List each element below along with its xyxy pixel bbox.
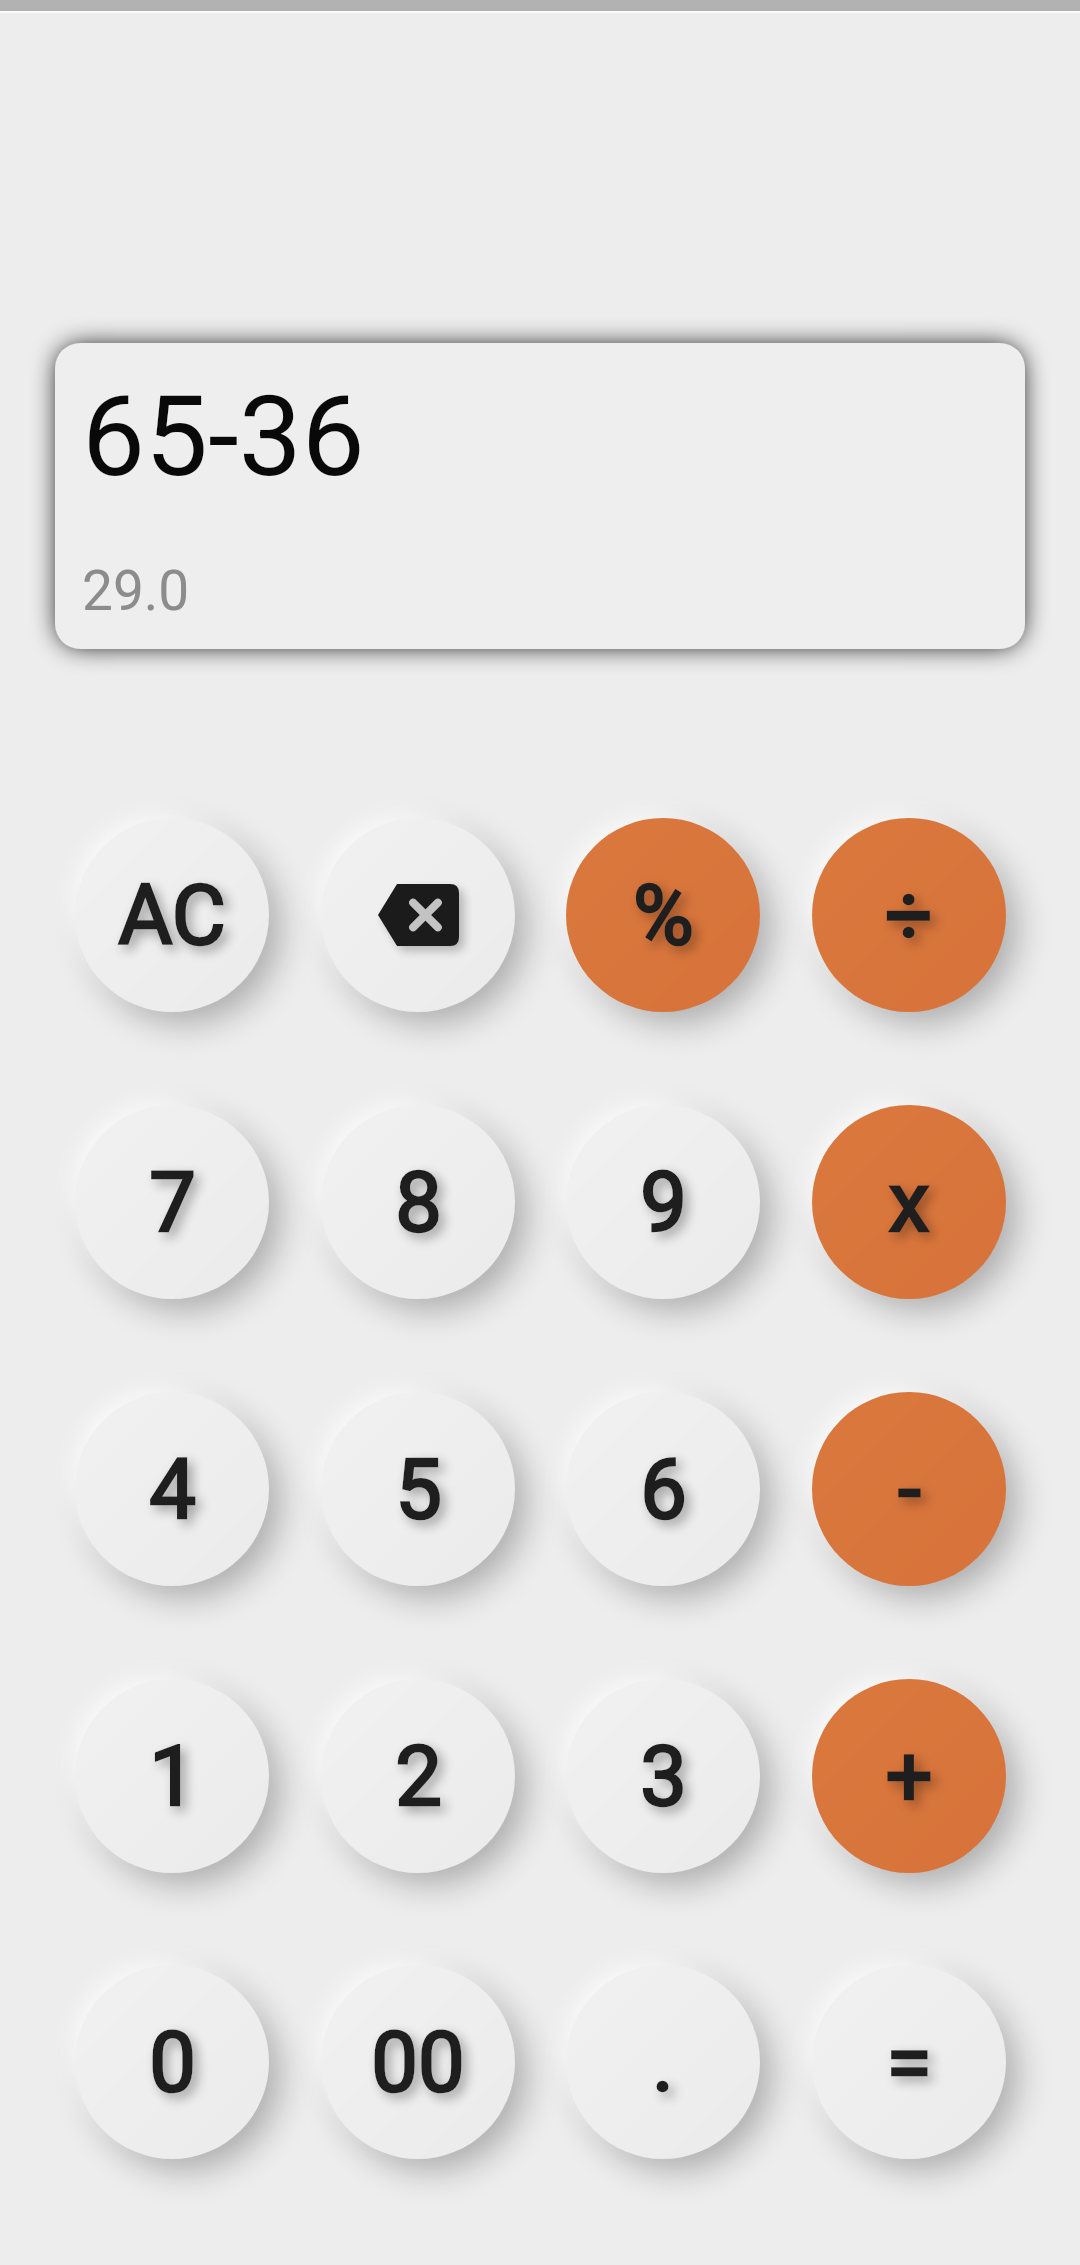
button[interactable]: Divide bbox=[812, 818, 1006, 1012]
button[interactable]: 0 bbox=[75, 1965, 269, 2159]
staticText: 7 bbox=[149, 1154, 196, 1251]
staticText: . bbox=[652, 2014, 674, 2111]
button[interactable]: 5 bbox=[321, 1392, 515, 1586]
staticText: 0 bbox=[149, 2014, 196, 2111]
button[interactable]: 4 bbox=[75, 1392, 269, 1586]
button[interactable]: Multiply bbox=[812, 1105, 1006, 1299]
staticText: 9 bbox=[640, 1154, 687, 1251]
staticText: AC bbox=[118, 867, 226, 964]
staticText: + bbox=[885, 1728, 933, 1825]
staticText: 65-36 bbox=[82, 371, 365, 502]
button[interactable]: Decimal point bbox=[566, 1965, 760, 2159]
staticText: 29.0 bbox=[82, 559, 190, 623]
button[interactable]: 3 bbox=[566, 1679, 760, 1873]
button[interactable]: All clear bbox=[75, 818, 269, 1012]
staticText: - bbox=[898, 1441, 921, 1538]
button[interactable]: 65-36 bbox=[55, 343, 1025, 649]
button[interactable]: Minus bbox=[812, 1392, 1006, 1586]
staticText: 6 bbox=[640, 1441, 687, 1538]
staticText: 8 bbox=[395, 1154, 442, 1251]
button[interactable]: 00 bbox=[321, 1965, 515, 2159]
button[interactable]: 8 bbox=[321, 1105, 515, 1299]
staticText: 5 bbox=[395, 1441, 442, 1538]
button[interactable]: Backspace bbox=[321, 818, 515, 1012]
staticText: 4 bbox=[149, 1441, 196, 1538]
button[interactable]: Equals bbox=[812, 1965, 1006, 2159]
staticText: 2 bbox=[395, 1728, 442, 1825]
staticText: ÷ bbox=[885, 867, 933, 964]
staticText: % bbox=[633, 867, 694, 964]
button[interactable]: 9 bbox=[566, 1105, 760, 1299]
button[interactable]: 6 bbox=[566, 1392, 760, 1586]
staticText: 1 bbox=[149, 1728, 196, 1825]
button[interactable]: 2 bbox=[321, 1679, 515, 1873]
staticText: = bbox=[886, 2014, 932, 2111]
staticText: 3 bbox=[640, 1728, 687, 1825]
button[interactable]: Percent bbox=[566, 818, 760, 1012]
button[interactable]: Plus bbox=[812, 1679, 1006, 1873]
button[interactable]: 1 bbox=[75, 1679, 269, 1873]
staticText: x bbox=[888, 1154, 930, 1251]
staticText: 00 bbox=[371, 2014, 465, 2111]
button[interactable]: 7 bbox=[75, 1105, 269, 1299]
